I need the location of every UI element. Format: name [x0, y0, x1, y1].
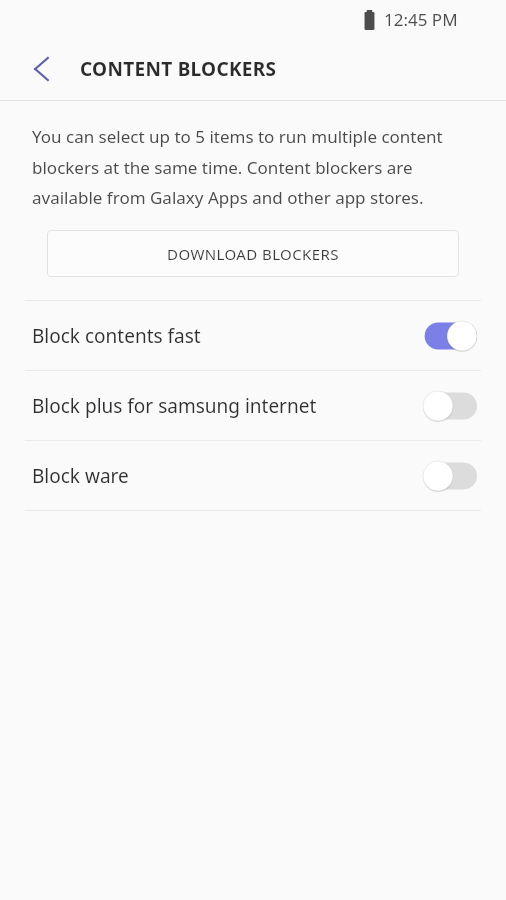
staticText: DOWNLOAD BLOCKERS	[167, 244, 339, 264]
staticText: 12:45 PM	[384, 8, 458, 31]
staticText: Block ware	[32, 463, 423, 489]
staticText: Block plus for samsung internet	[32, 393, 423, 419]
button[interactable]: Block ware	[0, 441, 506, 510]
staticText: You can select up to 5 items to run mult…	[32, 125, 482, 209]
button[interactable]: Block contents fast	[0, 301, 506, 370]
button[interactable]: Off	[423, 461, 477, 491]
button[interactable]: Back	[18, 46, 64, 92]
staticText: CONTENT BLOCKERS	[80, 56, 277, 82]
staticText: Block contents fast	[32, 323, 423, 349]
button[interactable]: Block plus for samsung internet	[0, 371, 506, 440]
button[interactable]: DOWNLOAD BLOCKERS	[47, 230, 459, 277]
button[interactable]: Off	[423, 391, 477, 421]
button[interactable]: On	[423, 321, 477, 351]
